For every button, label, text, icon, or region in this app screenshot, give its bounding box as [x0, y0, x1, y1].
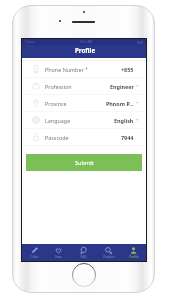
staticText: Profession: [45, 83, 72, 90]
button[interactable]: Province: [22, 95, 146, 111]
staticText: Save: [55, 255, 62, 259]
staticText: English: [114, 117, 134, 124]
staticText: Language: [45, 117, 71, 124]
staticText: Province: [45, 100, 67, 107]
staticText: +855: [121, 66, 134, 73]
button[interactable]: Color: [22, 244, 46, 261]
button[interactable]: Save: [46, 244, 71, 261]
staticText: Color: [30, 255, 39, 259]
staticText: Submit: [75, 159, 94, 167]
button[interactable]: Submit: [26, 154, 142, 171]
button[interactable]: Language: [22, 112, 146, 128]
button[interactable]: FAQ: [71, 244, 96, 261]
button[interactable]: Product: [96, 244, 121, 261]
staticText: Product: [103, 255, 115, 259]
staticText: *: [84, 66, 88, 72]
staticText: 9:41 AM: [80, 40, 93, 44]
staticText: Phone Number: [45, 66, 84, 73]
staticText: FAQ: [80, 255, 87, 259]
button[interactable]: Passcode: [22, 129, 146, 145]
button[interactable]: Profession: [22, 78, 146, 94]
staticText: 7944: [121, 134, 134, 141]
staticText: Profile: [129, 255, 139, 259]
staticText: Phnom P...: [106, 100, 134, 107]
staticText: Profile: [75, 46, 96, 54]
staticText: Carrier: [25, 40, 36, 44]
staticText: Passcode: [45, 134, 69, 141]
staticText: Engineer: [110, 83, 134, 90]
button[interactable]: Profile: [121, 244, 146, 261]
button[interactable]: Phone Number: [22, 61, 146, 77]
